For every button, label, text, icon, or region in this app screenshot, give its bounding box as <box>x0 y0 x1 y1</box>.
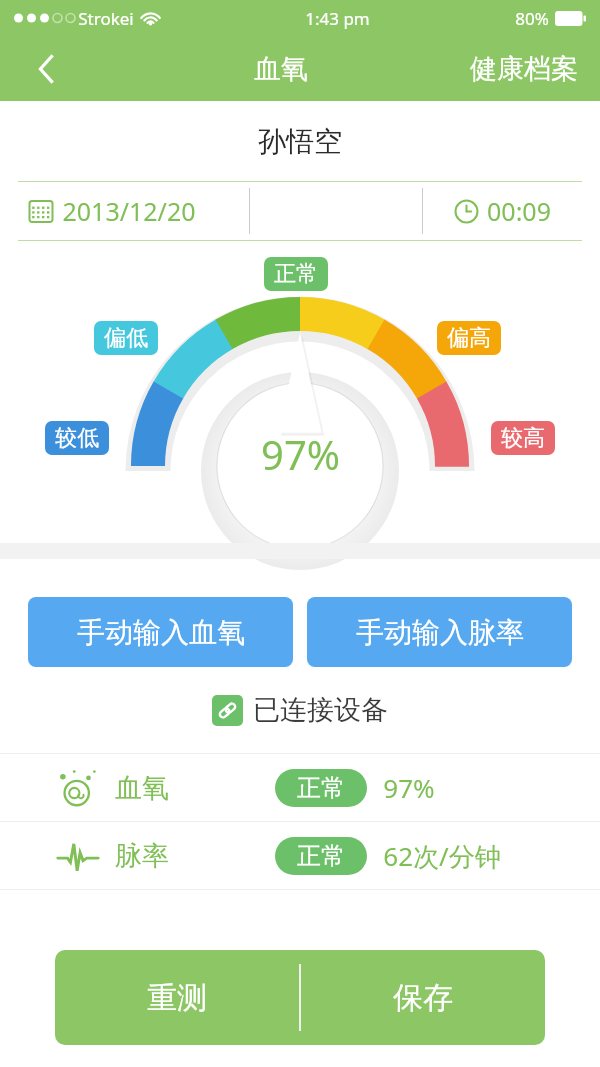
staticText: 80% <box>515 7 549 30</box>
button[interactable]: 脉率 <box>0 822 600 889</box>
button[interactable]: 血氧 <box>0 754 600 821</box>
staticText: 血氧 <box>115 771 169 805</box>
button[interactable]: 健康档案 <box>470 52 578 86</box>
staticText: 1:43 pm <box>305 7 370 30</box>
staticText: 手动输入脉率 <box>356 615 524 650</box>
staticText: 保存 <box>393 979 453 1017</box>
staticText: 血氧 <box>254 52 308 86</box>
staticText: Strokei <box>78 7 134 30</box>
staticText: 脉率 <box>115 839 169 873</box>
button[interactable]: 保存 <box>301 950 545 1045</box>
staticText: 手动输入血氧 <box>77 615 245 650</box>
staticText: 62次/分钟 <box>383 838 501 874</box>
staticText: 健康档案 <box>470 52 578 86</box>
staticText: 重测 <box>147 979 207 1017</box>
button[interactable]: 重测 <box>55 950 299 1045</box>
staticText: 较低 <box>55 424 99 452</box>
button[interactable]: 手动输入脉率 <box>307 597 572 667</box>
button[interactable]: Back <box>0 36 92 101</box>
button[interactable]: 手动输入血氧 <box>28 597 293 667</box>
staticText: 正常 <box>297 773 345 803</box>
staticText: 孙悟空 <box>258 124 342 159</box>
staticText: 00:09 <box>487 194 551 228</box>
staticText: 2013/12/20 <box>62 194 196 228</box>
staticText: 97% <box>383 770 435 805</box>
staticText: 偏低 <box>104 324 148 352</box>
staticText: 97% <box>261 427 340 481</box>
staticText: 正常 <box>297 841 345 871</box>
staticText: 正常 <box>274 260 318 288</box>
button[interactable]: 已连接设备 <box>0 693 600 727</box>
staticText: 偏高 <box>447 324 491 352</box>
staticText: 较高 <box>501 424 545 452</box>
staticText: 已连接设备 <box>253 693 388 727</box>
